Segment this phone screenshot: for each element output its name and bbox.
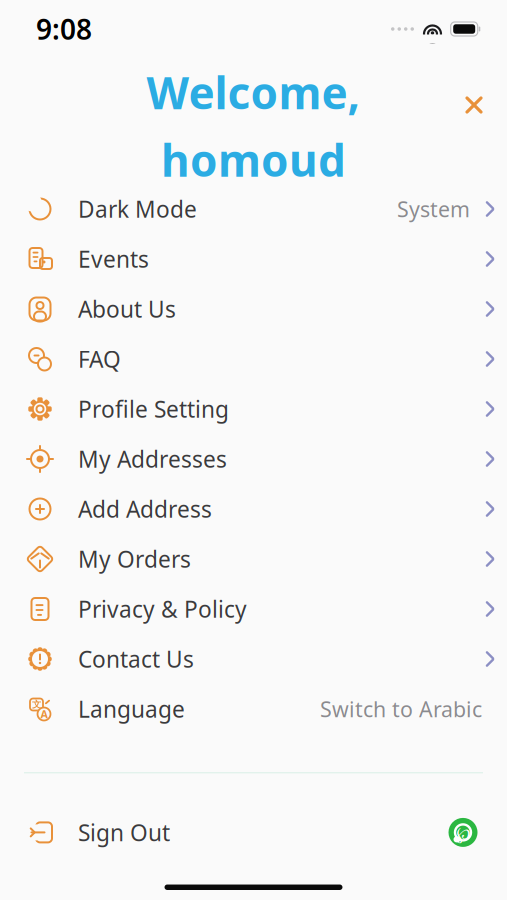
staticText: Switch to Arabic	[320, 695, 482, 723]
staticText: My Orders	[78, 544, 191, 574]
staticText: Events	[78, 244, 149, 274]
button[interactable]: Contact Us	[0, 634, 507, 684]
staticText: Language	[78, 694, 185, 724]
staticText: ℘	[456, 821, 470, 844]
staticText: Sign Out	[78, 817, 170, 847]
staticText: Welcome,	[146, 63, 360, 121]
button[interactable]: My Addresses	[0, 434, 507, 484]
staticText: 9:08	[36, 10, 92, 48]
button[interactable]: 文	[0, 684, 507, 734]
staticText: A	[40, 707, 47, 721]
staticText: Profile Setting	[78, 394, 229, 424]
staticText: FAQ	[78, 344, 121, 374]
button[interactable]: Events	[0, 234, 507, 284]
button[interactable]: FAQ	[0, 334, 507, 384]
button[interactable]: Add Address	[0, 484, 507, 534]
button[interactable]: Contact us on WhatsApp	[441, 810, 485, 854]
staticText: 文	[32, 699, 41, 710]
button[interactable]: Sign Out	[0, 807, 170, 857]
staticText: About Us	[78, 294, 176, 324]
button[interactable]: Privacy & Policy	[0, 584, 507, 634]
staticText: Contact Us	[78, 644, 194, 674]
button[interactable]: Dark Mode	[0, 184, 507, 234]
button[interactable]: Profile Setting	[0, 384, 507, 434]
button[interactable]: My Orders	[0, 534, 507, 584]
staticText: Dark Mode	[78, 194, 197, 224]
button[interactable]: About Us	[0, 284, 507, 334]
button[interactable]: Close	[454, 85, 494, 125]
staticText: Privacy & Policy	[78, 594, 247, 624]
staticText: Add Address	[78, 494, 212, 524]
staticText: My Addresses	[78, 444, 227, 474]
staticText: System	[397, 195, 470, 223]
staticText: homoud	[161, 130, 346, 189]
